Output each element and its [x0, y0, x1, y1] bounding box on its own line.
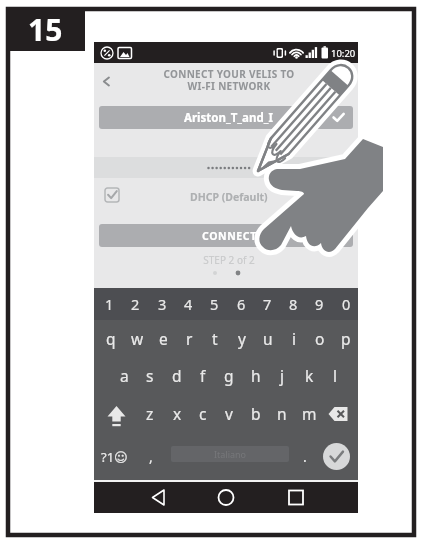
staticText: q	[106, 328, 116, 349]
staticText: b	[251, 403, 261, 424]
staticText: 3	[158, 294, 167, 314]
button[interactable]: q	[98, 320, 124, 357]
button[interactable]: l	[322, 357, 348, 393]
button[interactable]: Backspace	[318, 393, 358, 433]
button[interactable]: s	[137, 357, 163, 393]
button[interactable]: ?1☺	[98, 433, 130, 480]
button[interactable]: 8	[280, 288, 306, 320]
button[interactable]: n	[269, 393, 295, 433]
button[interactable]: 2	[122, 288, 148, 320]
button[interactable]: p	[333, 320, 359, 357]
staticText: o	[315, 328, 325, 349]
button[interactable]: 4	[175, 288, 201, 320]
button[interactable]: a	[111, 357, 137, 393]
staticText: z	[146, 403, 154, 424]
button[interactable]: z	[137, 393, 163, 433]
button[interactable]: e	[150, 320, 176, 357]
staticText: 1	[105, 294, 114, 314]
staticText: 2	[131, 294, 140, 314]
button[interactable]: CONNECT	[99, 224, 353, 247]
button[interactable]: v	[216, 393, 242, 433]
button[interactable]: 6	[228, 288, 254, 320]
button[interactable]: i	[281, 320, 307, 357]
staticText: STEP 2 of 2	[97, 253, 361, 267]
staticText: 4	[184, 294, 193, 314]
staticText: ,	[149, 447, 153, 466]
staticText: w	[131, 328, 144, 349]
staticText: .	[303, 447, 307, 466]
button[interactable]: o	[307, 320, 333, 357]
button[interactable]: t	[202, 320, 228, 357]
button[interactable]: 3	[149, 288, 175, 320]
button[interactable]: h	[243, 357, 269, 393]
staticText: m	[302, 403, 317, 424]
staticText: h	[251, 365, 261, 386]
staticText: Italiano	[214, 448, 247, 460]
button[interactable]: d	[164, 357, 190, 393]
button[interactable]: g	[216, 357, 242, 393]
staticText: d	[172, 365, 182, 386]
staticText: 7	[263, 294, 272, 314]
button[interactable]: 7	[254, 288, 280, 320]
button[interactable]: 1	[96, 288, 122, 320]
button[interactable]: y	[229, 320, 255, 357]
staticText: y	[238, 328, 246, 349]
staticText: r	[186, 328, 193, 349]
button[interactable]: Done	[322, 433, 350, 480]
staticText: f	[200, 365, 206, 386]
staticText: s	[146, 365, 154, 386]
staticText: 10:20	[331, 47, 356, 60]
staticText: e	[159, 328, 168, 349]
button[interactable]: Recents	[276, 485, 316, 510]
button[interactable]: f	[190, 357, 216, 393]
staticText: j	[280, 365, 284, 386]
button[interactable]: r	[176, 320, 202, 357]
staticText: x	[173, 403, 182, 424]
button[interactable]: b	[243, 393, 269, 433]
staticText: l	[333, 365, 337, 386]
staticText: u	[263, 328, 273, 349]
button[interactable]: Shift	[94, 393, 134, 433]
button[interactable]: j	[269, 357, 295, 393]
button[interactable]: ,	[138, 433, 164, 480]
staticText: 5	[210, 294, 219, 314]
button[interactable]: 9	[306, 288, 332, 320]
staticText: p	[341, 328, 351, 349]
button[interactable]: .	[292, 433, 318, 480]
staticText: a	[120, 365, 129, 386]
staticText: ?1☺	[101, 448, 128, 466]
staticText: k	[305, 365, 314, 386]
staticText: CONNECT	[202, 229, 257, 243]
button[interactable]: DHCP (Default)	[94, 185, 358, 209]
button[interactable]: w	[124, 320, 150, 357]
button[interactable]: m	[296, 393, 322, 433]
staticText: 8	[289, 294, 298, 314]
staticText: t	[212, 328, 218, 349]
staticText: 0	[342, 294, 351, 314]
button[interactable]: Home	[206, 485, 246, 510]
staticText: n	[277, 403, 287, 424]
button[interactable]	[94, 157, 358, 178]
button[interactable]: Ariston_T_and_I	[99, 106, 353, 129]
staticText: 9	[315, 294, 324, 314]
button[interactable]: k	[296, 357, 322, 393]
staticText: v	[225, 403, 233, 424]
staticText: i	[292, 328, 296, 349]
button[interactable]: Back	[95, 70, 117, 92]
button[interactable]: c	[190, 393, 216, 433]
staticText: g	[224, 365, 234, 386]
staticText: DHCP (Default)	[190, 190, 268, 204]
button[interactable]: 5	[201, 288, 227, 320]
staticText: c	[199, 403, 207, 424]
button[interactable]: x	[164, 393, 190, 433]
button[interactable]: u	[255, 320, 281, 357]
staticText: 6	[237, 294, 246, 314]
staticText: Ariston_T_and_I	[184, 110, 273, 126]
button[interactable]: 0	[333, 288, 359, 320]
staticText: 15	[28, 9, 63, 50]
staticText: CONNECT YOUR VELIS TO WI-FI NETWORK	[105, 67, 353, 93]
button[interactable]: Back	[139, 485, 179, 510]
